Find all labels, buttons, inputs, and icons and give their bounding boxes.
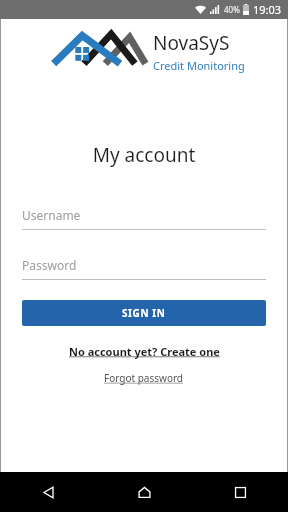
button[interactable]: Username <box>22 207 266 230</box>
staticText: Forgot password <box>104 371 184 385</box>
button[interactable]: Recent apps <box>192 472 288 512</box>
staticText: SIGN IN <box>122 306 166 320</box>
staticText: NovaSyS <box>153 30 230 56</box>
button[interactable]: Password <box>22 257 266 280</box>
staticText: Credit Monitoring <box>153 58 245 73</box>
button[interactable]: Forgot password <box>1 371 287 385</box>
staticText: 40% <box>224 4 240 15</box>
staticText: My account <box>1 142 287 168</box>
button[interactable]: No account yet? Create one <box>1 344 287 359</box>
button[interactable]: Back <box>0 472 96 512</box>
staticText: Username <box>22 207 81 223</box>
staticText: No account yet? Create one <box>69 344 220 359</box>
button[interactable]: Home <box>96 472 192 512</box>
button[interactable]: SIGN IN <box>22 300 266 326</box>
staticText: 19:03 <box>253 2 282 17</box>
staticText: Password <box>22 257 77 273</box>
